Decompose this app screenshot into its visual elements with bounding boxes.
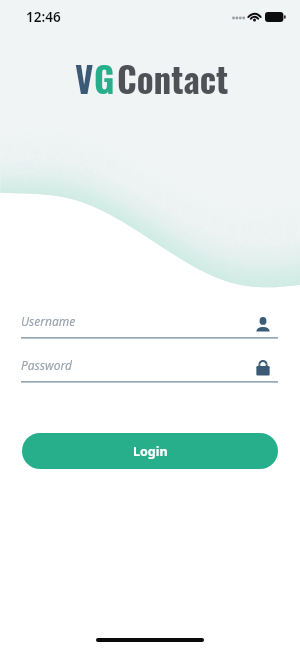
staticText: Login: [133, 443, 168, 460]
button[interactable]: Password field: [21, 354, 278, 384]
button[interactable]: Username field: [21, 310, 278, 340]
staticText: Contact: [117, 52, 229, 104]
staticText: G: [94, 52, 115, 104]
staticText: 12:46: [26, 8, 61, 26]
staticText: V: [75, 52, 94, 104]
button[interactable]: Login: [22, 433, 278, 469]
staticText: Username: [21, 313, 76, 329]
staticText: Password: [21, 357, 72, 373]
